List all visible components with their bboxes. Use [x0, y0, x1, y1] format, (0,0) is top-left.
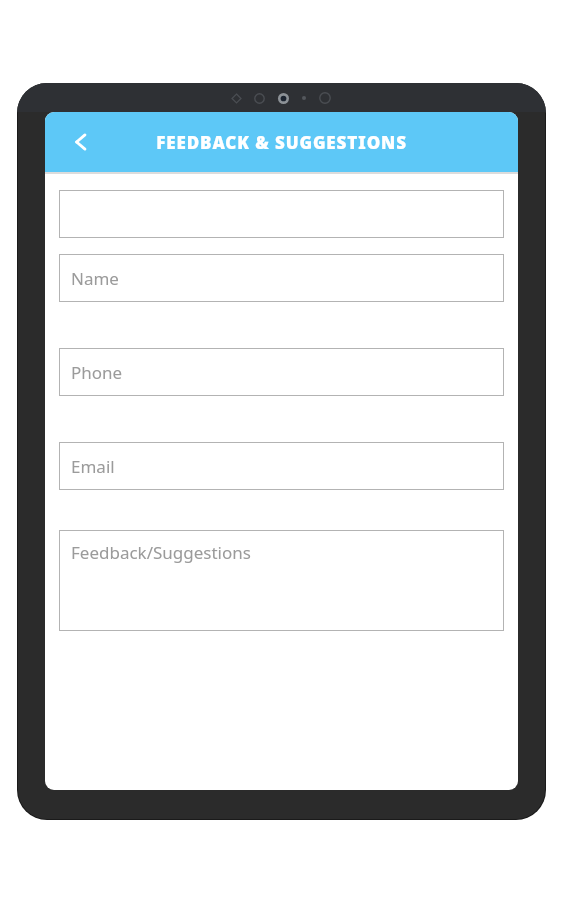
staticText: FEEDBACK & SUGGESTIONS	[156, 131, 407, 154]
button[interactable]: Email	[59, 442, 504, 490]
staticText: Phone	[71, 361, 123, 384]
staticText: Name	[71, 267, 119, 290]
staticText: Feedback/Suggestions	[71, 541, 251, 564]
button[interactable]: Back	[59, 120, 103, 164]
button[interactable]: Name	[59, 254, 504, 302]
button[interactable]	[59, 190, 504, 238]
button[interactable]: Feedback/Suggestions	[59, 530, 504, 631]
button[interactable]: Phone	[59, 348, 504, 396]
staticText: Email	[71, 455, 115, 478]
